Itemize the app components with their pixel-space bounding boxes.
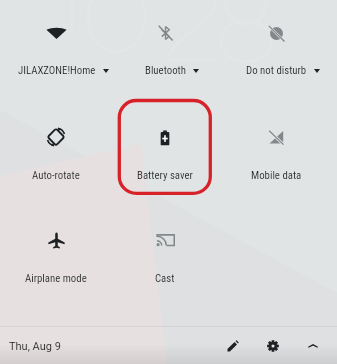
button[interactable]: Do not disturb bbox=[221, 3, 331, 75]
button[interactable]: Edit bbox=[219, 332, 247, 360]
button[interactable]: Settings bbox=[259, 332, 287, 360]
button[interactable]: Bluetooth bbox=[110, 3, 220, 75]
button[interactable]: Auto-rotate bbox=[1, 107, 111, 179]
staticText: Do not disturb bbox=[246, 64, 307, 77]
staticText: Battery saver bbox=[137, 169, 193, 182]
button[interactable]: Collapse bbox=[299, 332, 327, 360]
button[interactable]: Mobile data bbox=[221, 107, 331, 179]
staticText: Airplane mode bbox=[25, 272, 87, 285]
button[interactable]: Airplane mode bbox=[1, 210, 111, 282]
button[interactable]: JILAXZONE!Home bbox=[1, 3, 111, 75]
staticText: Cast bbox=[155, 272, 175, 285]
staticText: Thu, Aug 9 bbox=[9, 340, 61, 353]
staticText: Mobile data bbox=[251, 169, 302, 182]
button[interactable]: Cast bbox=[110, 210, 220, 282]
staticText: Auto-rotate bbox=[32, 169, 80, 182]
staticText: Bluetooth bbox=[145, 64, 186, 77]
staticText: JILAXZONE!Home bbox=[18, 64, 96, 77]
button[interactable]: Thu, Aug 9 bbox=[9, 338, 61, 354]
button[interactable]: Battery saver bbox=[110, 107, 220, 179]
